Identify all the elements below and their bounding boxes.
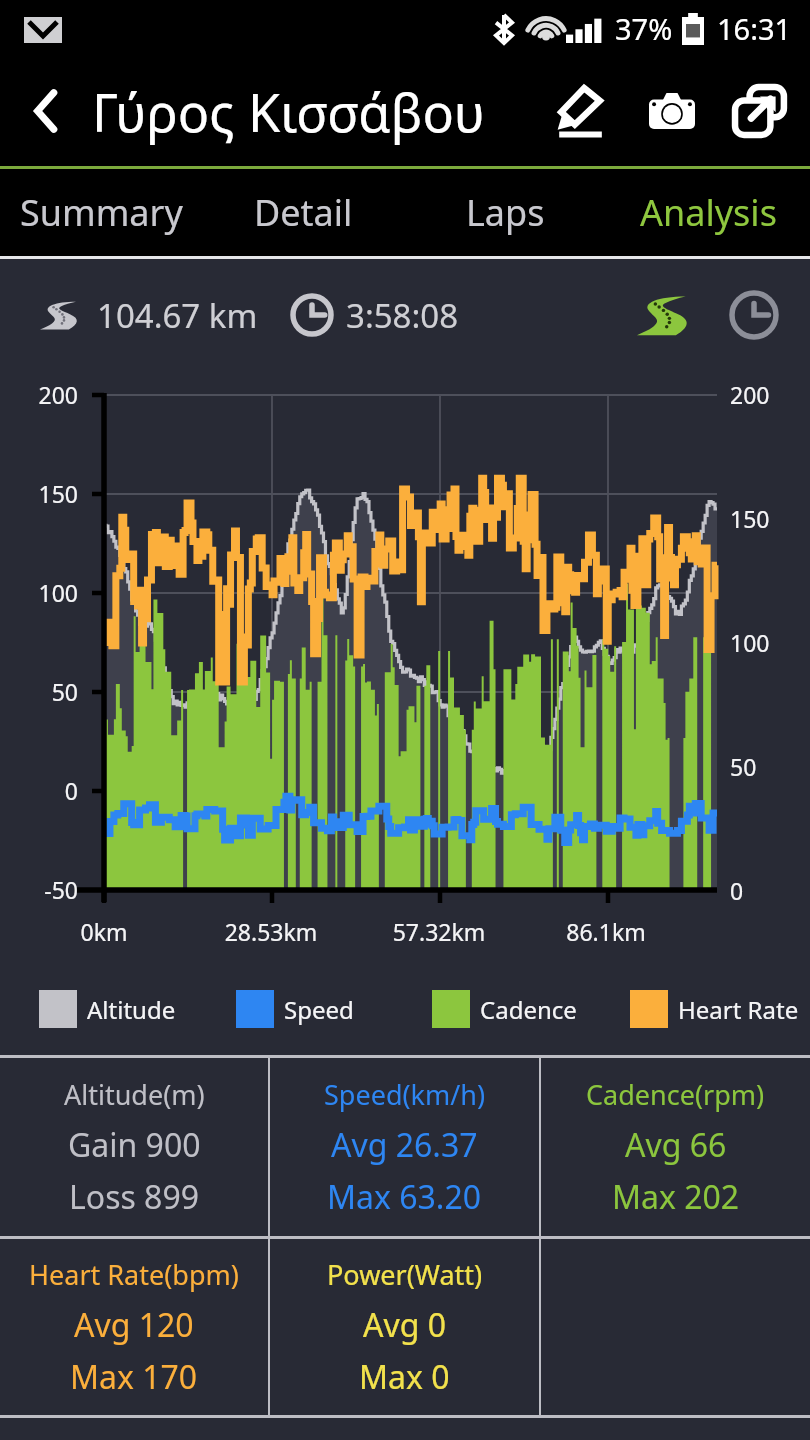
staticText: Cadence(rpm) — [586, 1076, 765, 1113]
staticText: Loss 899 — [69, 1175, 200, 1219]
staticText: 57.32km — [384, 916, 494, 947]
staticText: Cadence — [480, 993, 577, 1026]
button[interactable]: Edit — [534, 56, 626, 166]
staticText: Detail — [254, 188, 353, 237]
button[interactable]: Detail — [202, 169, 404, 256]
staticText: 0 — [730, 875, 744, 906]
button[interactable]: Summary — [0, 169, 202, 256]
staticText: Analysis — [640, 188, 777, 237]
staticText: Heart Rate — [678, 993, 799, 1026]
staticText: Gain 900 — [68, 1123, 201, 1167]
staticText: Heart Rate(bpm) — [29, 1256, 239, 1293]
staticText: 150 — [730, 503, 770, 534]
staticText: 200 — [730, 379, 770, 410]
staticText: 100 — [730, 627, 770, 658]
button[interactable]: Laps — [404, 169, 607, 256]
staticText: Avg 120 — [74, 1303, 194, 1347]
staticText: 86.1km — [561, 916, 651, 947]
staticText: 3:58:08 — [346, 293, 459, 338]
staticText: Max 202 — [612, 1175, 740, 1219]
staticText: Altitude(m) — [64, 1076, 205, 1113]
button[interactable]: Share — [718, 56, 802, 166]
staticText: 50 — [730, 751, 757, 782]
button[interactable]: Power(Watt) — [270, 1239, 539, 1415]
staticText: Avg 0 — [363, 1303, 447, 1347]
staticText: 0km — [74, 916, 134, 947]
staticText: 100 — [0, 577, 78, 608]
staticText: 104.67 km — [97, 293, 258, 338]
button[interactable]: Altitude(m) — [0, 1058, 268, 1236]
staticText: 16:31 — [717, 9, 792, 48]
staticText: Speed(km/h) — [324, 1076, 486, 1113]
staticText: Avg 66 — [625, 1123, 727, 1167]
staticText: 0 — [0, 775, 78, 806]
staticText: 200 — [0, 379, 78, 410]
staticText: Power(Watt) — [327, 1256, 483, 1293]
staticText: Max 63.20 — [327, 1175, 482, 1219]
staticText: Altitude — [87, 993, 176, 1026]
staticText: Summary — [20, 188, 183, 237]
staticText: Max 0 — [359, 1355, 450, 1399]
staticText: Γύρος Κισσάβου — [92, 76, 485, 147]
staticText: 150 — [0, 478, 78, 509]
button[interactable]: Analysis — [607, 169, 810, 256]
button[interactable]: Camera — [626, 56, 718, 166]
button[interactable]: Speed(km/h) — [270, 1058, 539, 1236]
button[interactable]: Cadence(rpm) — [541, 1058, 810, 1236]
staticText: Laps — [466, 188, 545, 237]
staticText: 50 — [0, 676, 78, 707]
staticText: -50 — [0, 874, 78, 905]
button[interactable]: Time — [714, 275, 794, 355]
button[interactable]: Back — [0, 56, 92, 166]
button[interactable]: Distance — [624, 275, 704, 355]
staticText: Avg 26.37 — [331, 1123, 478, 1167]
staticText: Max 170 — [70, 1355, 198, 1399]
staticText: Speed — [284, 993, 354, 1026]
button[interactable]: Heart Rate(bpm) — [0, 1239, 268, 1415]
staticText: 37% — [615, 9, 673, 48]
staticText: 28.53km — [216, 916, 326, 947]
